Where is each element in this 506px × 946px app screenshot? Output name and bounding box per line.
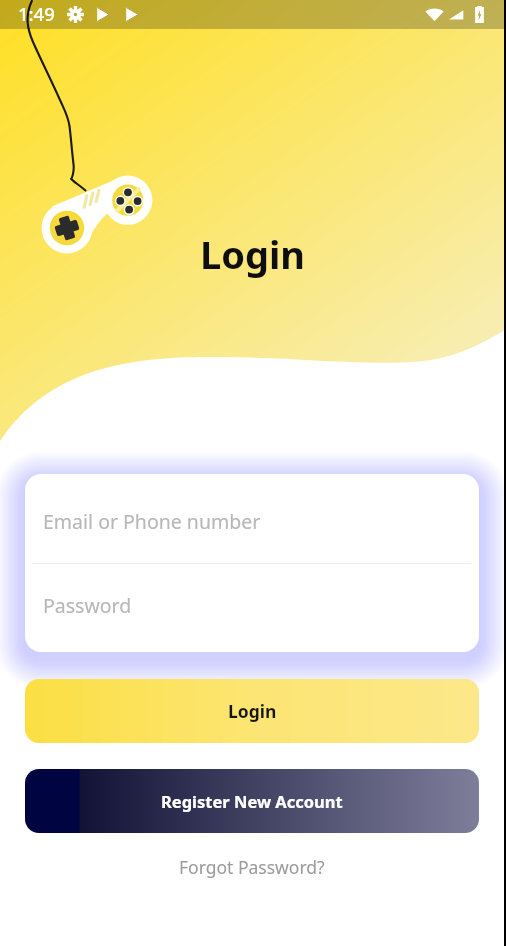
staticText: Email or Phone number — [43, 508, 261, 535]
staticText: Password — [43, 592, 132, 619]
staticText: 1:49 — [18, 1, 55, 26]
staticText: Forgot Password? — [179, 855, 325, 879]
button[interactable]: Password — [25, 564, 479, 652]
button[interactable]: Login — [25, 679, 479, 743]
button[interactable]: Register New Account — [25, 769, 479, 833]
staticText: Login — [228, 699, 277, 723]
staticText: Register New Account — [161, 790, 343, 812]
staticText: Login — [200, 228, 306, 280]
button[interactable]: Forgot Password? — [167, 847, 337, 887]
button[interactable]: Email or Phone number — [25, 474, 479, 563]
